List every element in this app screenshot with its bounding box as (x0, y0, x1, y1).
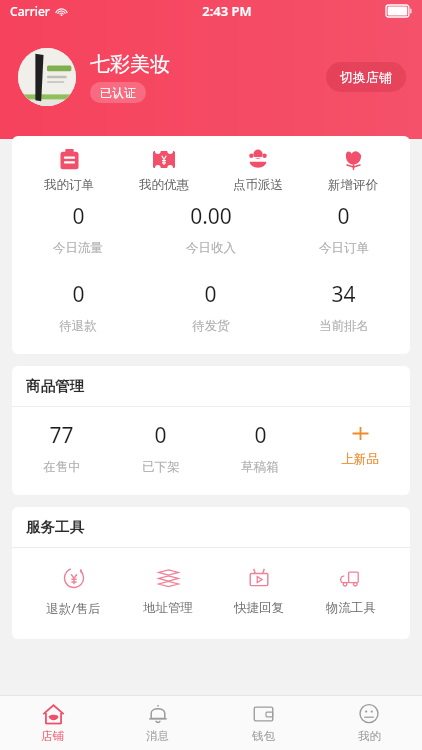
staticText: 新增评价 (328, 177, 378, 193)
staticText: 七彩美妆 (90, 52, 170, 77)
staticText: 我的 (358, 729, 381, 743)
staticText: 消息 (146, 729, 169, 743)
staticText: 商品管理 (26, 377, 84, 395)
staticText: 今日订单 (319, 240, 369, 256)
staticText: 钱包 (252, 729, 275, 743)
staticText: 今日收入 (186, 240, 236, 256)
staticText: 今日流量 (53, 240, 103, 256)
button[interactable]: 0.00 (144, 202, 277, 256)
staticText: 待发货 (192, 318, 230, 334)
button[interactable]: 消息 (105, 696, 210, 750)
staticText: 0 (72, 280, 85, 309)
button[interactable]: 0 (144, 280, 277, 334)
staticText: 点币派送 (233, 177, 283, 193)
button[interactable]: 新增评价 (316, 144, 390, 197)
button[interactable]: 上新品 (310, 421, 410, 467)
staticText: 待退款 (59, 318, 97, 334)
button[interactable]: 快捷回复 (226, 564, 292, 618)
button[interactable]: 34 (277, 280, 410, 334)
staticText: 0 (337, 202, 350, 231)
staticText: 物流工具 (326, 600, 376, 616)
staticText: 已认证 (100, 85, 136, 100)
button[interactable]: 退款/售后 (38, 564, 109, 619)
staticText: 快捷回复 (234, 600, 284, 616)
staticText: 已下架 (142, 459, 180, 475)
button[interactable]: 切换店铺 (326, 62, 406, 92)
staticText: 在售中 (43, 459, 81, 475)
button[interactable]: 已认证 (90, 82, 146, 103)
staticText: 0 (254, 421, 267, 450)
staticText: 店铺 (41, 729, 64, 743)
button[interactable]: 地址管理 (135, 564, 201, 618)
staticText: 草稿箱 (241, 459, 279, 475)
staticText: 我的订单 (44, 177, 94, 193)
button[interactable]: 0 (277, 202, 410, 256)
staticText: 上新品 (341, 451, 379, 467)
button[interactable]: 0 (12, 280, 144, 334)
staticText: 0 (204, 280, 217, 309)
staticText: 切换店铺 (340, 69, 392, 85)
button[interactable]: 0 (210, 421, 310, 475)
button[interactable]: 物流工具 (318, 564, 384, 618)
staticText: 当前排名 (319, 318, 369, 334)
staticText: 0 (72, 202, 85, 231)
button[interactable]: 店铺数据 (12, 147, 410, 187)
button[interactable]: 钱包 (210, 696, 316, 750)
staticText: 2:43 PM (202, 2, 252, 20)
staticText: 77 (49, 421, 74, 450)
staticText: 我的优惠 (139, 177, 189, 193)
staticText: 地址管理 (143, 600, 193, 616)
button[interactable]: 我的优惠 (127, 144, 201, 197)
staticText: 0.00 (190, 202, 232, 231)
button[interactable]: 我的 (316, 696, 422, 750)
staticText: 0 (154, 421, 167, 450)
staticText: 店铺数据 (26, 158, 84, 176)
staticText: 34 (331, 280, 356, 309)
button[interactable]: 0 (12, 202, 144, 256)
button[interactable]: 77 (12, 421, 111, 475)
staticText: 服务工具 (26, 518, 84, 536)
button[interactable]: 我的订单 (32, 144, 106, 197)
staticText: Carrier (10, 3, 50, 19)
button[interactable]: 点币派送 (221, 144, 295, 197)
button[interactable]: 0 (111, 421, 210, 475)
button[interactable]: Shop avatar (18, 48, 76, 106)
staticText: 退款/售后 (46, 600, 101, 617)
button[interactable]: 店铺 (0, 696, 105, 750)
